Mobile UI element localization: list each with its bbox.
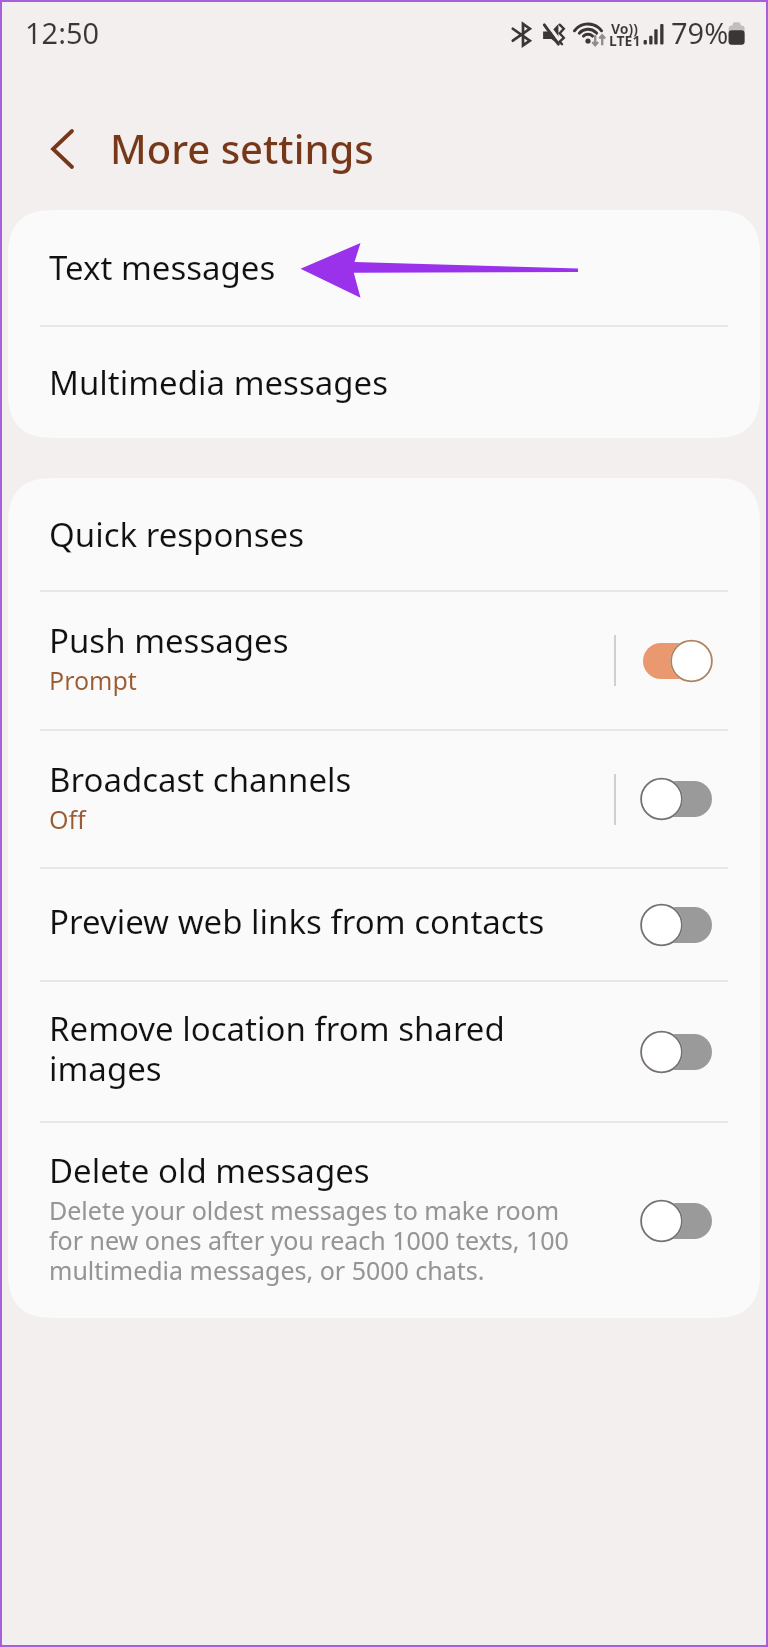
staticText: Multimedia messages [49,360,388,405]
button[interactable]: Delete old messages [8,1123,760,1318]
button[interactable]: Push messages [8,592,760,729]
staticText: Remove location from shared images [49,1006,505,1091]
staticText: Vo)) [611,19,639,38]
staticText: More settings [110,121,374,175]
button[interactable]: Quick responses [8,478,760,590]
staticText: 12:50 [25,13,100,52]
staticText: LTE1 [609,31,641,50]
button[interactable]: Text messages [8,210,760,325]
button[interactable]: Switch off [635,774,729,824]
button[interactable]: Back [26,114,98,186]
staticText: Off [49,802,86,836]
staticText: Delete your oldest messages to make room… [49,1193,569,1287]
button[interactable]: Switch off [635,1027,729,1077]
staticText: Text messages [49,245,276,290]
button[interactable]: Switch off [635,1196,729,1246]
button[interactable]: Switch on [635,636,729,686]
button[interactable]: Multimedia messages [8,327,760,438]
staticText: Preview web links from contacts [49,899,545,944]
staticText: Broadcast channels [49,757,352,802]
staticText: Push messages [49,618,289,663]
button[interactable]: Switch off [635,900,729,950]
button[interactable]: Remove location from shared images [8,982,760,1121]
staticText: Prompt [49,663,137,697]
staticText: 79% [671,13,729,52]
button[interactable]: Preview web links from contacts [8,869,760,980]
staticText: Delete old messages [49,1148,370,1193]
staticText: Quick responses [49,512,304,557]
button[interactable]: Broadcast channels [8,731,760,867]
